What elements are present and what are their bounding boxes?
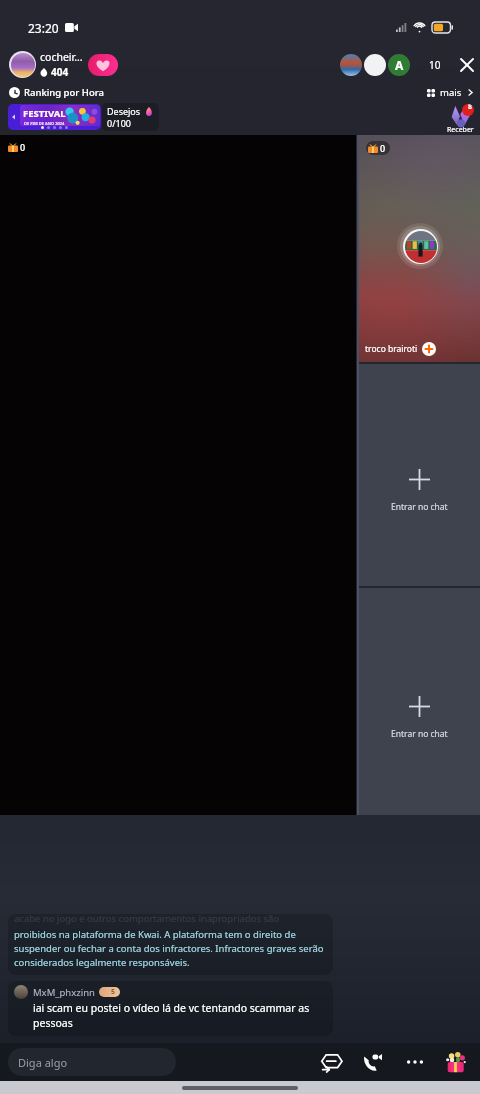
button[interactable]: Ranking por Hora <box>9 86 104 99</box>
staticText: 23:20 <box>28 20 59 36</box>
staticText: A <box>395 57 404 73</box>
button[interactable]: 0 <box>359 135 480 362</box>
staticText: mais <box>440 86 462 99</box>
button[interactable]: Seguir <box>422 342 436 356</box>
staticText: DE FIM DE ANO 2024 <box>24 121 65 126</box>
staticText: Desejos <box>107 105 141 117</box>
button[interactable]: 8 <box>447 100 474 135</box>
button[interactable]: Curtir <box>88 54 118 76</box>
button[interactable]: Espectador <box>364 54 386 76</box>
button[interactable]: Diga algo <box>8 1048 176 1076</box>
staticText: iai scam eu postei o vídeo lá de vc tent… <box>33 1001 327 1030</box>
staticText: cocheir... <box>40 50 83 64</box>
button[interactable]: Entrar no chat <box>359 588 480 815</box>
staticText: 8 <box>468 104 473 112</box>
staticText: Diga algo <box>18 1055 68 1070</box>
staticText: Entrar no chat <box>391 501 448 513</box>
button[interactable]: Fechar <box>458 56 476 74</box>
staticText: Entrar no chat <box>391 728 448 740</box>
button[interactable]: Espectador <box>340 54 362 76</box>
button[interactable]: Chamada de vídeo <box>359 1049 385 1075</box>
staticText: 0/100 <box>107 117 131 129</box>
button[interactable]: Espectador <box>388 54 410 76</box>
staticText: 10 <box>429 58 441 72</box>
button[interactable]: Compartilhar <box>318 1049 344 1075</box>
staticText: 5 <box>111 987 116 997</box>
staticText: MxM_phxzinn <box>33 986 95 999</box>
staticText: Receber <box>447 125 474 135</box>
staticText: Ranking por Hora <box>24 86 104 99</box>
button[interactable]: Mais opções <box>402 1049 428 1075</box>
button[interactable]: Entrar no chat <box>359 364 480 586</box>
button[interactable]: mais <box>427 86 474 99</box>
button[interactable]: Desejos <box>102 103 159 131</box>
staticText: 0 <box>20 141 26 153</box>
button[interactable]: Presentes <box>442 1049 468 1075</box>
button[interactable]: 0 <box>0 135 356 815</box>
staticText: 404 <box>51 65 69 79</box>
staticText: acabe no jogo e outros comportamentos in… <box>14 914 280 925</box>
staticText: 0 <box>380 142 386 154</box>
staticText: troco brairoti <box>365 343 418 355</box>
button[interactable]: FESTIVAL <box>8 104 101 130</box>
staticText: proibidos na plataforma de Kwai. A plata… <box>14 928 327 969</box>
staticText: FESTIVAL <box>23 107 66 120</box>
